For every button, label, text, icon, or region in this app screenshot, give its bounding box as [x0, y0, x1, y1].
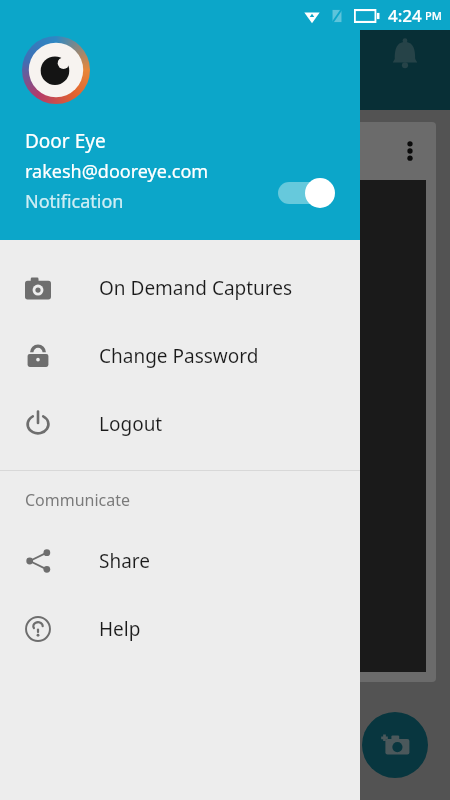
button[interactable]: More options: [398, 139, 422, 163]
staticText: Notification: [25, 189, 124, 214]
staticText: On Demand Captures: [99, 275, 293, 301]
staticText: Door Eye: [25, 128, 106, 154]
staticText: 4:24: [388, 4, 422, 27]
staticText: Help: [99, 616, 141, 642]
button[interactable]: Change Password: [0, 322, 360, 390]
button[interactable]: Add capture: [362, 712, 428, 778]
button[interactable]: [274, 176, 338, 210]
other: On Demand Captures: [25, 275, 51, 301]
staticText: Logout: [99, 411, 163, 437]
staticText: rakesh@dooreye.com: [25, 159, 209, 184]
other: Logout: [25, 411, 51, 437]
button[interactable]: Help: [0, 595, 360, 663]
other: Help: [25, 616, 51, 642]
staticText: Communicate: [25, 489, 131, 511]
button[interactable]: Share: [0, 527, 360, 595]
button[interactable]: Logout: [0, 390, 360, 458]
staticText: 16:23:44: [28, 186, 91, 204]
button[interactable]: Notifications: [388, 38, 422, 72]
other: Change Password: [25, 343, 51, 369]
button[interactable]: On Demand Captures: [0, 254, 360, 322]
other: Share: [25, 548, 51, 574]
staticText: Change Password: [99, 343, 259, 369]
staticText: Share: [99, 548, 151, 574]
staticText: PM: [425, 8, 442, 23]
